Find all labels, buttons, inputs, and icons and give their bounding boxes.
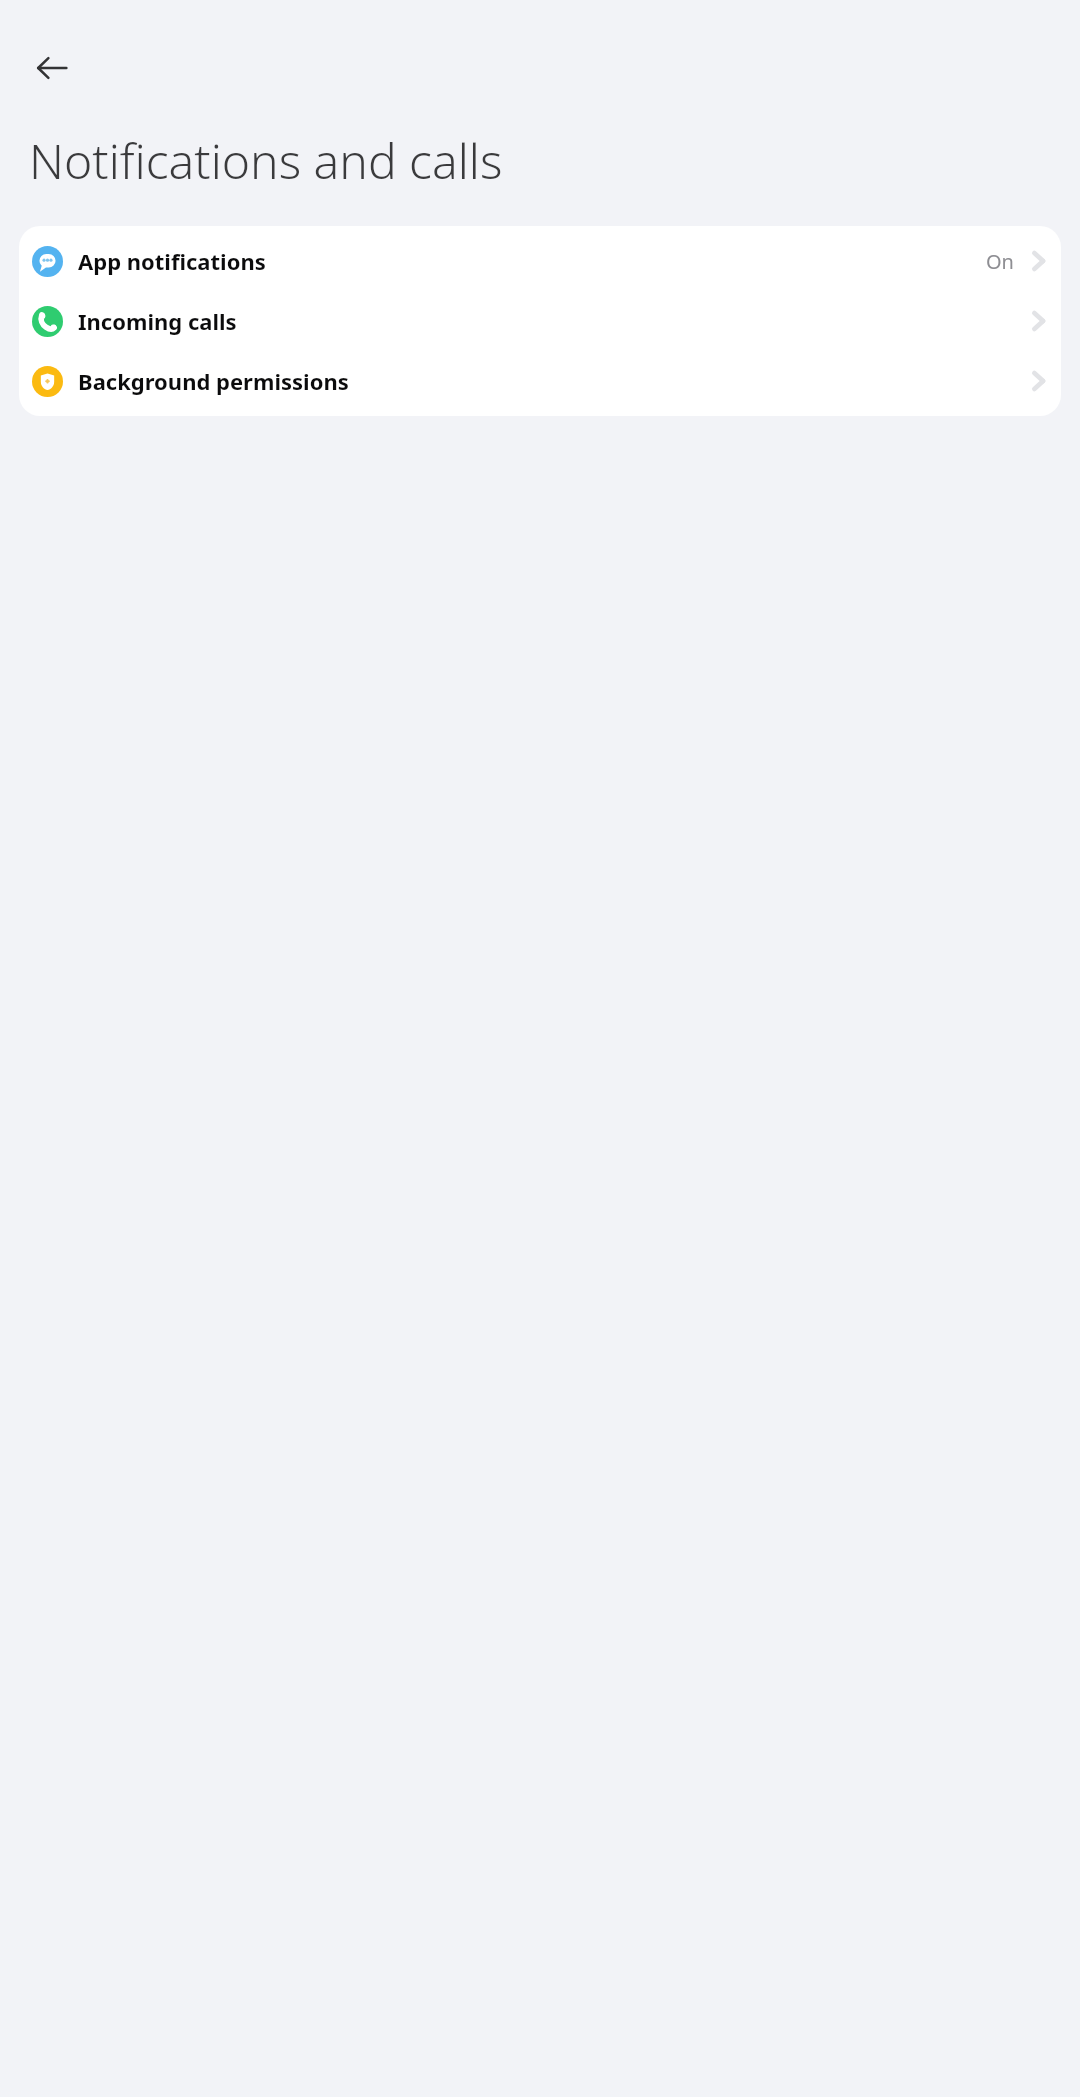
button[interactable]: Incoming calls xyxy=(19,291,1061,351)
staticText: App notifications xyxy=(78,246,266,276)
button[interactable]: Background permissions xyxy=(19,351,1061,411)
staticText: Incoming calls xyxy=(78,306,237,336)
button[interactable]: Back xyxy=(20,36,84,100)
button[interactable]: App notifications xyxy=(19,231,1061,291)
staticText: Notifications and calls xyxy=(29,128,980,193)
staticText: On xyxy=(986,248,1014,275)
staticText: Background permissions xyxy=(78,366,349,396)
